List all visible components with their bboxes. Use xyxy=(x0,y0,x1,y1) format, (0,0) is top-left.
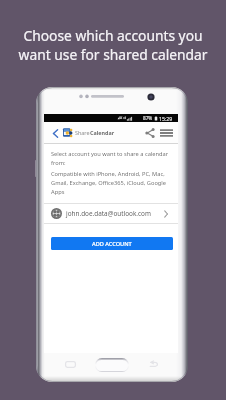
staticText: Calendar xyxy=(90,129,115,136)
staticText: 15:29 xyxy=(159,115,173,122)
staticText: Share xyxy=(75,129,90,136)
staticText: 87% xyxy=(143,115,153,121)
staticText: Select account you want to share a calen… xyxy=(51,150,172,167)
button[interactable]: john.doe.data@outlook.com xyxy=(44,204,178,223)
staticText: Compatible with iPhone, Android, PC, Mac… xyxy=(51,170,172,195)
staticText: john.doe.data@outlook.com xyxy=(66,209,151,218)
button[interactable]: Share xyxy=(142,123,157,143)
staticText: Choose which accounts you want use for s… xyxy=(0,26,226,64)
staticText: ADD ACCOUNT xyxy=(92,240,132,248)
button[interactable]: Menu xyxy=(157,123,175,143)
button[interactable]: ADD ACCOUNT xyxy=(51,237,173,250)
button[interactable]: Back xyxy=(48,123,62,143)
